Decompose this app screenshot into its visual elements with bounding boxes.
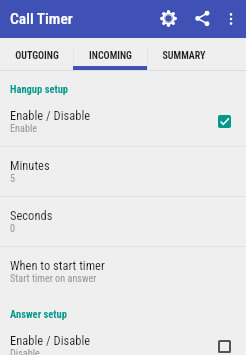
staticText: Disable	[10, 348, 40, 355]
button[interactable]: Settings	[155, 5, 181, 31]
button[interactable]: Toggle	[218, 340, 231, 353]
button[interactable]: SUMMARY	[147, 38, 220, 70]
staticText: Enable / Disable	[10, 333, 91, 348]
staticText: Answer setup	[10, 308, 67, 320]
button[interactable]: Seconds	[0, 197, 246, 246]
staticText: Start timer on answer	[10, 273, 97, 285]
button[interactable]: Share	[189, 5, 215, 31]
staticText: 0	[10, 223, 16, 235]
staticText: 5	[10, 173, 16, 185]
staticText: Enable	[10, 123, 38, 135]
staticText: Hangup setup	[10, 83, 69, 95]
button[interactable]: Toggle	[218, 115, 231, 128]
button[interactable]: More options	[218, 6, 244, 32]
staticText: INCOMING	[89, 50, 132, 62]
staticText: Minutes	[10, 158, 50, 173]
button[interactable]: When to start timer	[0, 247, 246, 296]
staticText: Enable / Disable	[10, 108, 91, 123]
button[interactable]: Enable / Disable	[0, 322, 246, 355]
button[interactable]: INCOMING	[73, 38, 147, 70]
staticText: Call Timer	[10, 10, 73, 28]
button[interactable]: Enable / Disable	[0, 97, 246, 146]
button[interactable]: Minutes	[0, 147, 246, 196]
staticText: SUMMARY	[162, 50, 206, 62]
staticText: OUTGOING	[15, 50, 59, 62]
staticText: Seconds	[10, 208, 53, 223]
staticText: When to start timer	[10, 258, 105, 273]
button[interactable]: OUTGOING	[0, 38, 73, 70]
